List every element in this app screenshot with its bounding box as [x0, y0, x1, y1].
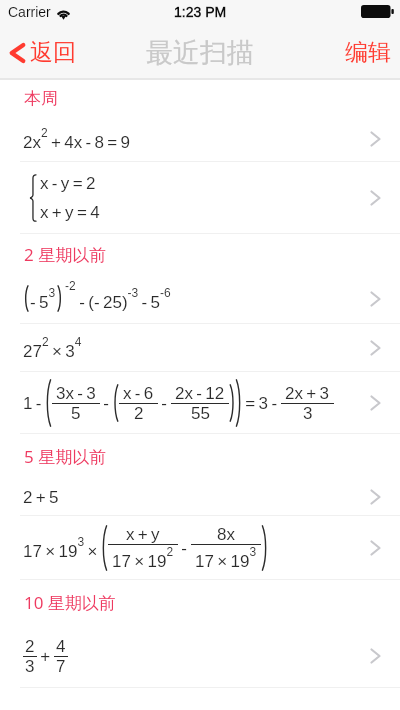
other: Open	[370, 489, 381, 505]
staticText: = 3 -	[242, 394, 281, 413]
button[interactable]: x - y = 2	[0, 162, 400, 234]
staticText: 编辑	[345, 38, 391, 67]
staticText: - (- 25)-3 - 5-6	[76, 286, 171, 312]
staticText: Carrier	[8, 4, 51, 20]
staticText: 3x - 3	[56, 384, 96, 403]
staticText: x - y = 2	[40, 174, 96, 193]
staticText: 返回	[30, 38, 76, 67]
staticText: -2	[65, 279, 76, 292]
staticText: 1:23 PM	[174, 4, 227, 20]
other: Open	[370, 540, 381, 556]
other: Open	[370, 291, 381, 307]
staticText: 3	[303, 404, 313, 423]
other: Open	[370, 340, 381, 356]
staticText: 55	[191, 404, 210, 423]
button[interactable]: 编辑	[329, 28, 400, 73]
other: Open	[370, 131, 381, 147]
staticText: 10 星期以前	[24, 591, 116, 614]
button[interactable]: 返回	[0, 28, 90, 73]
other: Open	[370, 648, 381, 664]
staticText: 5	[71, 404, 81, 423]
button[interactable]: 2	[0, 624, 400, 688]
staticText: 3	[25, 657, 35, 676]
staticText: 17 × 193 ×	[23, 535, 101, 561]
button[interactable]: 2x2 + 4x - 8 = 9	[0, 116, 400, 162]
button[interactable]: 272 × 34	[0, 324, 400, 372]
staticText: - 53	[30, 286, 56, 312]
button[interactable]: 17 × 193 ×	[0, 516, 400, 580]
staticText: 2 + 5	[23, 488, 59, 507]
staticText: 7	[56, 657, 66, 676]
other: Open	[370, 395, 381, 411]
button[interactable]: 1 -	[0, 372, 400, 434]
staticText: 8x	[217, 525, 235, 544]
staticText: 272 × 34	[23, 335, 82, 361]
staticText: 17 × 193	[195, 545, 257, 571]
button[interactable]: 2 + 5	[0, 478, 400, 516]
staticText: 5 星期以前	[24, 445, 107, 468]
staticText: 2x2 + 4x - 8 = 9	[23, 126, 131, 152]
staticText: 2	[25, 637, 35, 656]
staticText: 2	[134, 404, 144, 423]
other: Open	[370, 190, 381, 206]
staticText: -	[100, 394, 113, 413]
staticText: x + y = 4	[40, 203, 100, 222]
staticText: x + y	[126, 525, 160, 544]
staticText: 本周	[24, 88, 58, 109]
staticText: +	[37, 647, 54, 666]
staticText: 2x + 3	[285, 384, 330, 403]
staticText: -	[178, 539, 191, 558]
staticText: 4	[56, 637, 66, 656]
staticText: 2x - 12	[175, 384, 225, 403]
staticText: 2 星期以前	[24, 243, 107, 266]
staticText: -	[158, 394, 171, 413]
staticText: 最近扫描	[146, 36, 254, 70]
staticText: 1 -	[23, 394, 45, 413]
staticText: x - 6	[123, 384, 154, 403]
button[interactable]: - 53	[0, 274, 400, 324]
staticText: 17 × 192	[112, 545, 174, 571]
